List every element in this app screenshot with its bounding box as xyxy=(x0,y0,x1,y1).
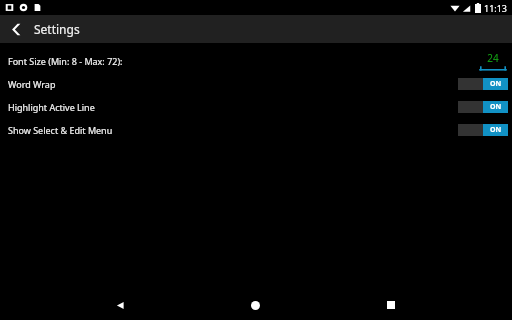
staticText: Font Size (Min: 8 - Max: 72): xyxy=(8,55,123,67)
button[interactable]: Back xyxy=(105,290,135,320)
staticText: ON xyxy=(490,102,502,112)
staticText: Highlight Active Line xyxy=(8,101,95,113)
staticText: ON xyxy=(490,125,502,135)
button[interactable]: ON xyxy=(458,78,508,90)
button[interactable]: Highlight Active Line xyxy=(0,95,512,118)
button[interactable]: Back xyxy=(0,15,34,43)
staticText: Show Select & Edit Menu xyxy=(8,124,113,136)
button[interactable]: ON xyxy=(458,101,508,113)
button[interactable]: Show Select & Edit Menu xyxy=(0,118,512,141)
button[interactable]: Home xyxy=(240,290,270,320)
staticText: ON xyxy=(490,79,502,89)
button[interactable]: Word Wrap xyxy=(0,72,512,95)
staticText: 24 xyxy=(480,51,506,65)
button[interactable]: Font Size (Min: 8 - Max: 72): xyxy=(0,49,512,72)
button[interactable]: Recent apps xyxy=(376,290,406,320)
staticText: Word Wrap xyxy=(8,78,56,90)
button[interactable]: 24 xyxy=(480,51,506,71)
staticText: Settings xyxy=(34,21,80,37)
button[interactable]: ON xyxy=(458,124,508,136)
staticText: 11:13 xyxy=(484,2,508,14)
